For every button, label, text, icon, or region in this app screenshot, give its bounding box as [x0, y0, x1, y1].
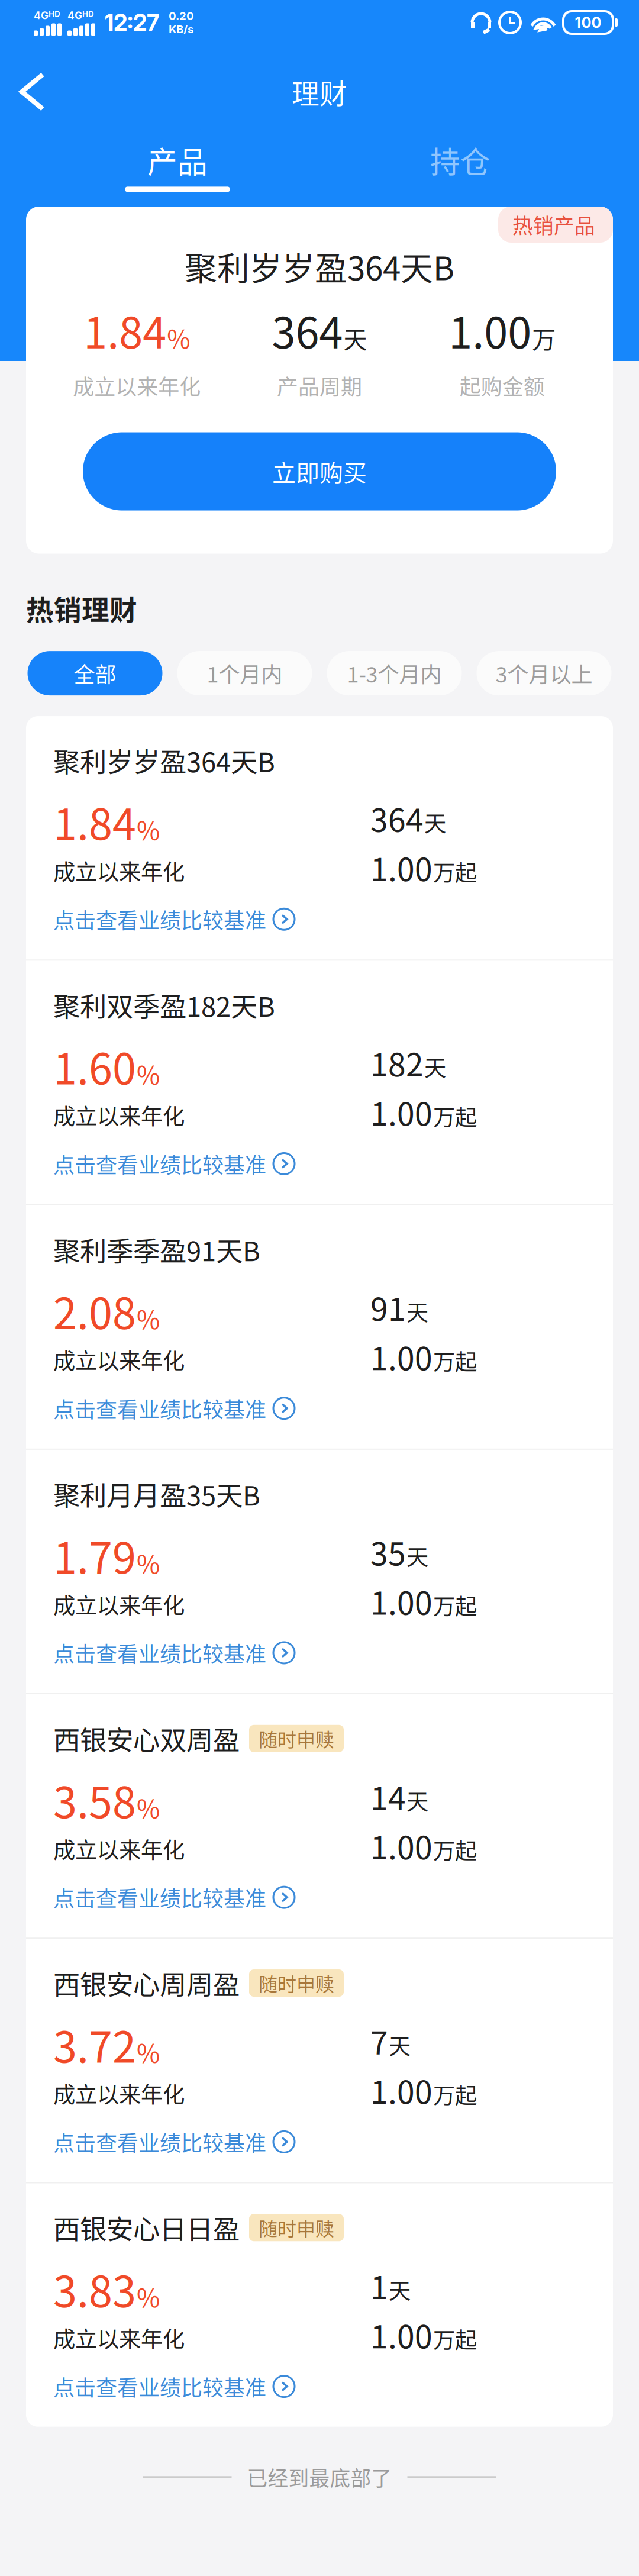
staticText: 已经到最底部了: [247, 2462, 392, 2492]
staticText: 35: [370, 1529, 406, 1574]
button[interactable]: Back: [0, 64, 66, 120]
button[interactable]: 西银安心双周盈: [26, 1694, 613, 1938]
staticText: 7: [370, 2018, 388, 2064]
staticText: 成立以来年化: [53, 855, 185, 887]
staticText: 成立以来年化: [53, 1588, 185, 1620]
staticText: 聚利岁岁盈364天B: [185, 243, 454, 289]
staticText: 1.00: [370, 2067, 433, 2113]
staticText: 3.58: [53, 1769, 136, 1830]
staticText: 立即购买: [272, 454, 367, 489]
button[interactable]: 聚利季季盈91天B: [26, 1205, 613, 1449]
staticText: 万起: [433, 2078, 477, 2110]
staticText: 182: [370, 1040, 424, 1085]
staticText: 成立以来年化: [53, 1099, 185, 1131]
staticText: 天: [389, 2273, 411, 2305]
staticText: 364: [272, 299, 343, 361]
staticText: 1.00: [370, 1823, 433, 1868]
staticText: 天: [389, 2029, 411, 2061]
staticText: 点击查看业绩比较基准: [53, 1637, 266, 1668]
button[interactable]: 产品: [89, 138, 266, 207]
staticText: 天: [406, 1784, 428, 1816]
staticText: HD: [49, 9, 60, 19]
staticText: %: [167, 319, 190, 356]
staticText: 点击查看业绩比较基准: [53, 904, 266, 935]
staticText: 聚利季季盈91天B: [53, 1230, 260, 1269]
staticText: 万起: [433, 1834, 477, 1866]
staticText: 成立以来年化: [53, 2077, 185, 2109]
button[interactable]: 全部: [28, 651, 162, 695]
staticText: %: [137, 1544, 160, 1581]
staticText: 1个月内: [207, 658, 283, 689]
button[interactable]: 聚利双季盈182天B: [26, 961, 613, 1204]
staticText: 2.08: [53, 1280, 136, 1341]
staticText: 产品: [147, 138, 208, 182]
button[interactable]: 聚利岁岁盈364天B: [26, 716, 613, 959]
staticText: 3.83: [53, 2258, 136, 2319]
button[interactable]: 立即购买: [83, 432, 556, 510]
staticText: 天: [406, 1540, 428, 1572]
staticText: 12:27: [105, 9, 159, 36]
staticText: 成立以来年化: [73, 370, 201, 401]
staticText: 14: [370, 1773, 406, 1819]
staticText: 聚利岁岁盈364天B: [53, 741, 275, 780]
staticText: 1.00: [370, 2312, 433, 2357]
staticText: 万: [532, 321, 556, 355]
staticText: 1.00: [449, 299, 531, 361]
button[interactable]: 聚利月月盈35天B: [26, 1450, 613, 1693]
staticText: 万起: [433, 1345, 477, 1377]
button[interactable]: 西银安心日日盈: [26, 2183, 613, 2427]
staticText: 点击查看业绩比较基准: [53, 1393, 266, 1424]
staticText: 点击查看业绩比较基准: [53, 1148, 266, 1179]
staticText: 万起: [433, 855, 477, 887]
staticText: 热销理财: [26, 588, 137, 628]
button[interactable]: 西银安心周周盈: [26, 1939, 613, 2182]
staticText: 天: [424, 1051, 446, 1083]
staticText: 点击查看业绩比较基准: [53, 2371, 266, 2402]
staticText: 万起: [433, 2323, 477, 2355]
staticText: 天: [424, 806, 446, 838]
staticText: 4G: [67, 9, 82, 22]
staticText: 1-3个月内: [347, 658, 442, 689]
staticText: HD: [82, 9, 94, 19]
staticText: 成立以来年化: [53, 2322, 185, 2354]
button[interactable]: 持仓: [372, 138, 549, 207]
button[interactable]: 3个月以上: [477, 651, 611, 695]
button[interactable]: 1个月内: [177, 651, 312, 695]
staticText: 364: [370, 795, 424, 841]
staticText: %: [137, 811, 160, 847]
staticText: 持仓: [430, 138, 490, 182]
staticText: 0.20: [169, 9, 194, 22]
staticText: 1: [370, 2262, 388, 2308]
staticText: 1.84: [84, 299, 166, 361]
staticText: KB/s: [169, 22, 193, 36]
staticText: 万起: [433, 1589, 477, 1621]
staticText: 聚利月月盈35天B: [53, 1475, 260, 1513]
staticText: %: [137, 2278, 160, 2314]
staticText: 随时申赎: [259, 1725, 334, 1752]
staticText: 1.84: [53, 790, 136, 852]
staticText: %: [137, 2033, 160, 2070]
staticText: 天: [406, 1295, 428, 1327]
staticText: 万起: [433, 1100, 477, 1132]
staticText: 成立以来年化: [53, 1344, 185, 1376]
staticText: 1.79: [53, 1524, 136, 1586]
staticText: 天: [343, 321, 367, 355]
staticText: 3.72: [53, 2013, 136, 2075]
staticText: 4G: [34, 9, 49, 22]
staticText: 随时申赎: [259, 1969, 334, 1997]
staticText: 1.60: [53, 1035, 136, 1097]
button[interactable]: 1-3个月内: [327, 651, 462, 695]
staticText: 点击查看业绩比较基准: [53, 1882, 266, 1913]
staticText: 理财: [292, 72, 347, 112]
staticText: 热销产品: [512, 210, 595, 239]
staticText: %: [137, 1300, 160, 1336]
staticText: 产品周期: [277, 370, 362, 401]
staticText: 西银安心日日盈: [53, 2208, 240, 2247]
staticText: 西银安心双周盈: [53, 1719, 240, 1758]
staticText: 全部: [74, 658, 116, 689]
staticText: 起购金额: [460, 370, 545, 401]
staticText: 点击查看业绩比较基准: [53, 2126, 266, 2157]
staticText: 成立以来年化: [53, 1833, 185, 1865]
staticText: 1.00: [370, 1089, 433, 1135]
staticText: 100: [575, 13, 601, 32]
